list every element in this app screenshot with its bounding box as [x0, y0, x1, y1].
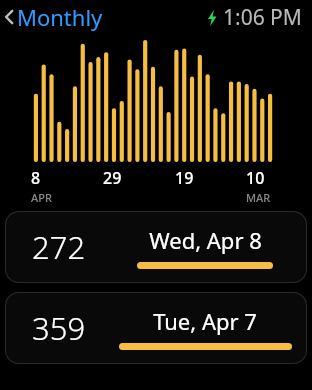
button[interactable]: 272	[5, 211, 307, 283]
staticText: 8	[31, 167, 41, 189]
staticText: 29	[103, 167, 122, 189]
button[interactable]: Monthly activity chart	[0, 34, 312, 167]
staticText: 359	[32, 307, 86, 349]
staticText: MAR	[246, 190, 271, 205]
staticText: 19	[175, 167, 194, 189]
staticText: 10	[246, 167, 265, 189]
staticText: 1:06 PM	[223, 3, 302, 32]
staticText: Wed, Apr 8	[149, 225, 262, 255]
button[interactable]: Monthly	[0, 2, 109, 32]
staticText: Monthly	[17, 2, 103, 32]
other: Charging	[206, 9, 218, 27]
button[interactable]: 359	[5, 292, 307, 364]
staticText: Tue, Apr 7	[153, 306, 257, 336]
staticText: 272	[32, 226, 86, 268]
staticText: APR	[31, 190, 52, 205]
